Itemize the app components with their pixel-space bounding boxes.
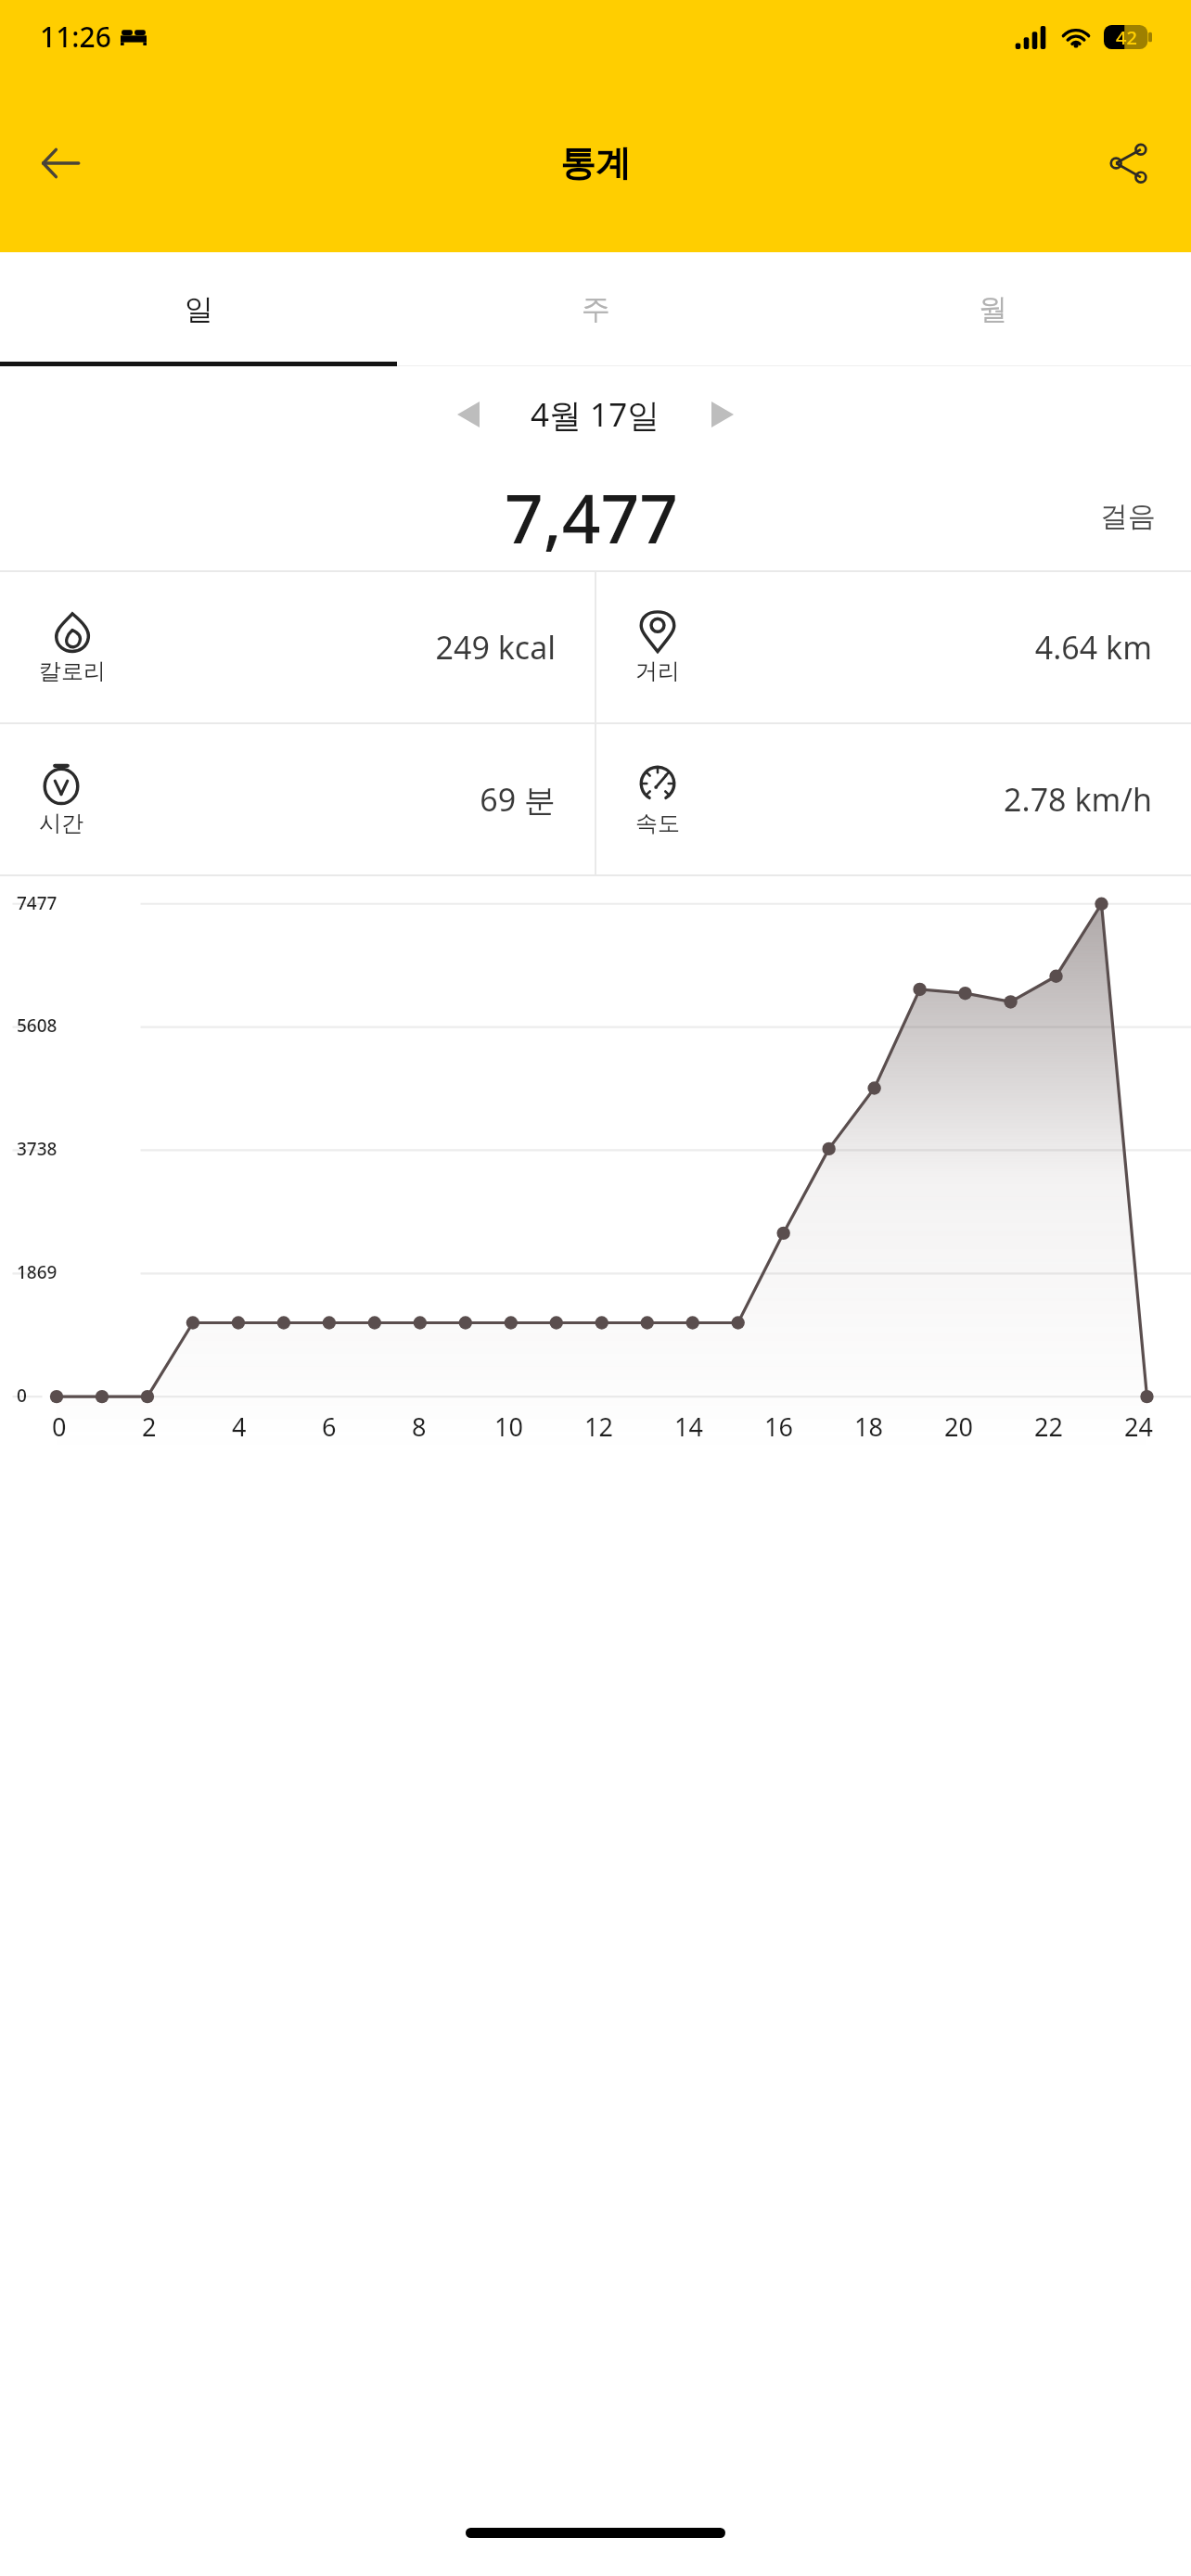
button[interactable]: Previous day — [432, 378, 505, 451]
button[interactable]: Next day — [686, 378, 759, 451]
staticText: 거리 — [635, 657, 680, 685]
staticText: 1869 — [17, 1260, 58, 1284]
staticText: 통계 — [560, 141, 631, 185]
staticText: 2 — [142, 1409, 157, 1444]
staticText: 16 — [764, 1409, 793, 1444]
staticText: 2.78 km/h — [1004, 778, 1152, 821]
staticText: 0 — [17, 1384, 27, 1408]
staticText: 42 — [1116, 25, 1137, 49]
button[interactable]: 거리 — [596, 572, 1191, 722]
staticText: 18 — [854, 1409, 883, 1444]
button[interactable]: 속도 — [596, 724, 1191, 874]
staticText: 칼로리 — [39, 657, 106, 685]
button[interactable]: 일 — [0, 252, 397, 366]
staticText: 7,477 — [505, 471, 678, 563]
staticText: 속도 — [635, 810, 680, 837]
staticText: 14 — [674, 1409, 703, 1444]
button[interactable]: 칼로리 — [0, 572, 595, 722]
staticText: 주 — [582, 291, 610, 327]
staticText: 0 — [52, 1409, 67, 1444]
staticText: 5608 — [17, 1014, 58, 1038]
staticText: 8 — [412, 1409, 427, 1444]
staticText: 11:26 — [40, 18, 111, 56]
staticText: 4.64 km — [1034, 626, 1152, 669]
staticText: 22 — [1034, 1409, 1063, 1444]
staticText: 7477 — [17, 891, 58, 915]
staticText: 4 — [232, 1409, 247, 1444]
button[interactable]: Back — [20, 123, 100, 203]
staticText: 3738 — [17, 1137, 58, 1161]
button[interactable]: 시간 — [0, 724, 595, 874]
staticText: 249 kcal — [435, 626, 556, 669]
staticText: 6 — [322, 1409, 337, 1444]
staticText: 69 분 — [480, 778, 556, 821]
staticText: 4월 17일 — [531, 392, 660, 437]
staticText: 월 — [979, 291, 1007, 327]
staticText: 12 — [584, 1409, 613, 1444]
staticText: 걸음 — [1100, 499, 1156, 534]
staticText: 24 — [1124, 1409, 1153, 1444]
button[interactable]: 주 — [397, 252, 794, 366]
staticText: 10 — [494, 1409, 523, 1444]
button[interactable]: 월 — [794, 252, 1191, 366]
staticText: 일 — [185, 291, 213, 327]
button[interactable]: Share — [1089, 123, 1169, 203]
staticText: 시간 — [39, 810, 83, 837]
staticText: 20 — [944, 1409, 973, 1444]
